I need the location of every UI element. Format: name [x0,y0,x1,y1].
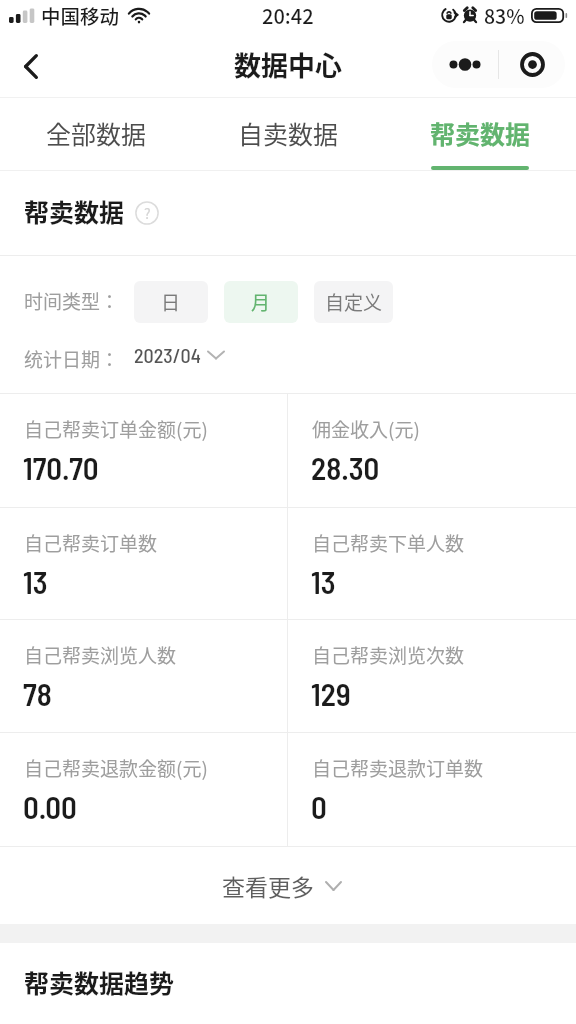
button[interactable]: 自己帮卖退款订单数 [288,733,576,846]
staticText: 自定义 [325,288,383,316]
button[interactable]: 帮卖数据 [384,98,576,171]
staticText: 自己帮卖订单数 [24,529,158,557]
button[interactable]: 全部数据 [0,98,192,171]
staticText: 78 [23,675,52,712]
staticText: 83% [484,1,525,29]
staticText: 佣金收入(元) [312,415,420,443]
staticText: 20:42 [262,1,314,30]
staticText: 129 [311,675,351,712]
staticText: 0.00 [23,788,77,825]
button[interactable]: 自定义 [314,281,393,323]
staticText: 自己帮卖订单金额(元) [24,415,208,443]
staticText: ? [144,203,151,223]
button[interactable]: 自己帮卖订单金额(元) [0,394,287,507]
button[interactable]: Back [0,37,62,95]
button[interactable]: 佣金收入(元) [288,394,576,507]
staticText: 全部数据 [46,115,147,151]
staticText: 13 [23,563,48,600]
button[interactable]: 自卖数据 [192,98,384,171]
button[interactable]: Help [135,201,159,225]
button[interactable]: 2023/04 [134,343,225,367]
staticText: 2023/04 [134,343,201,367]
staticText: 时间类型： [24,287,120,315]
button[interactable]: 自己帮卖订单数 [0,508,287,619]
staticText: 自己帮卖浏览次数 [312,641,465,669]
staticText: 自卖数据 [238,115,339,151]
staticText: 自己帮卖退款订单数 [312,754,484,782]
button[interactable]: More options [432,41,498,88]
button[interactable]: 日 [134,281,208,323]
staticText: 170.70 [23,449,99,486]
staticText: 查看更多 [222,869,314,902]
staticText: 帮卖数据趋势 [24,964,175,1000]
button[interactable]: 自己帮卖浏览人数 [0,620,287,732]
staticText: 月 [251,288,271,316]
staticText: 0 [311,788,327,825]
staticText: 28.30 [311,449,380,486]
button[interactable]: 查看更多 [0,847,576,924]
button[interactable]: 自己帮卖退款金额(元) [0,733,287,846]
staticText: 统计日期： [24,345,120,373]
button[interactable]: 月 [224,281,298,323]
button[interactable]: Close [499,41,565,88]
staticText: 13 [311,563,336,600]
staticText: 自己帮卖下单人数 [312,529,465,557]
button[interactable]: 自己帮卖浏览次数 [288,620,576,732]
staticText: 中国移动 [41,1,120,29]
staticText: 数据中心 [234,45,342,84]
staticText: 帮卖数据 [430,115,531,151]
staticText: 帮卖数据 [24,193,125,229]
button[interactable]: 自己帮卖下单人数 [288,508,576,619]
staticText: 日 [161,288,181,316]
staticText: 自己帮卖退款金额(元) [24,754,208,782]
staticText: 自己帮卖浏览人数 [24,641,177,669]
